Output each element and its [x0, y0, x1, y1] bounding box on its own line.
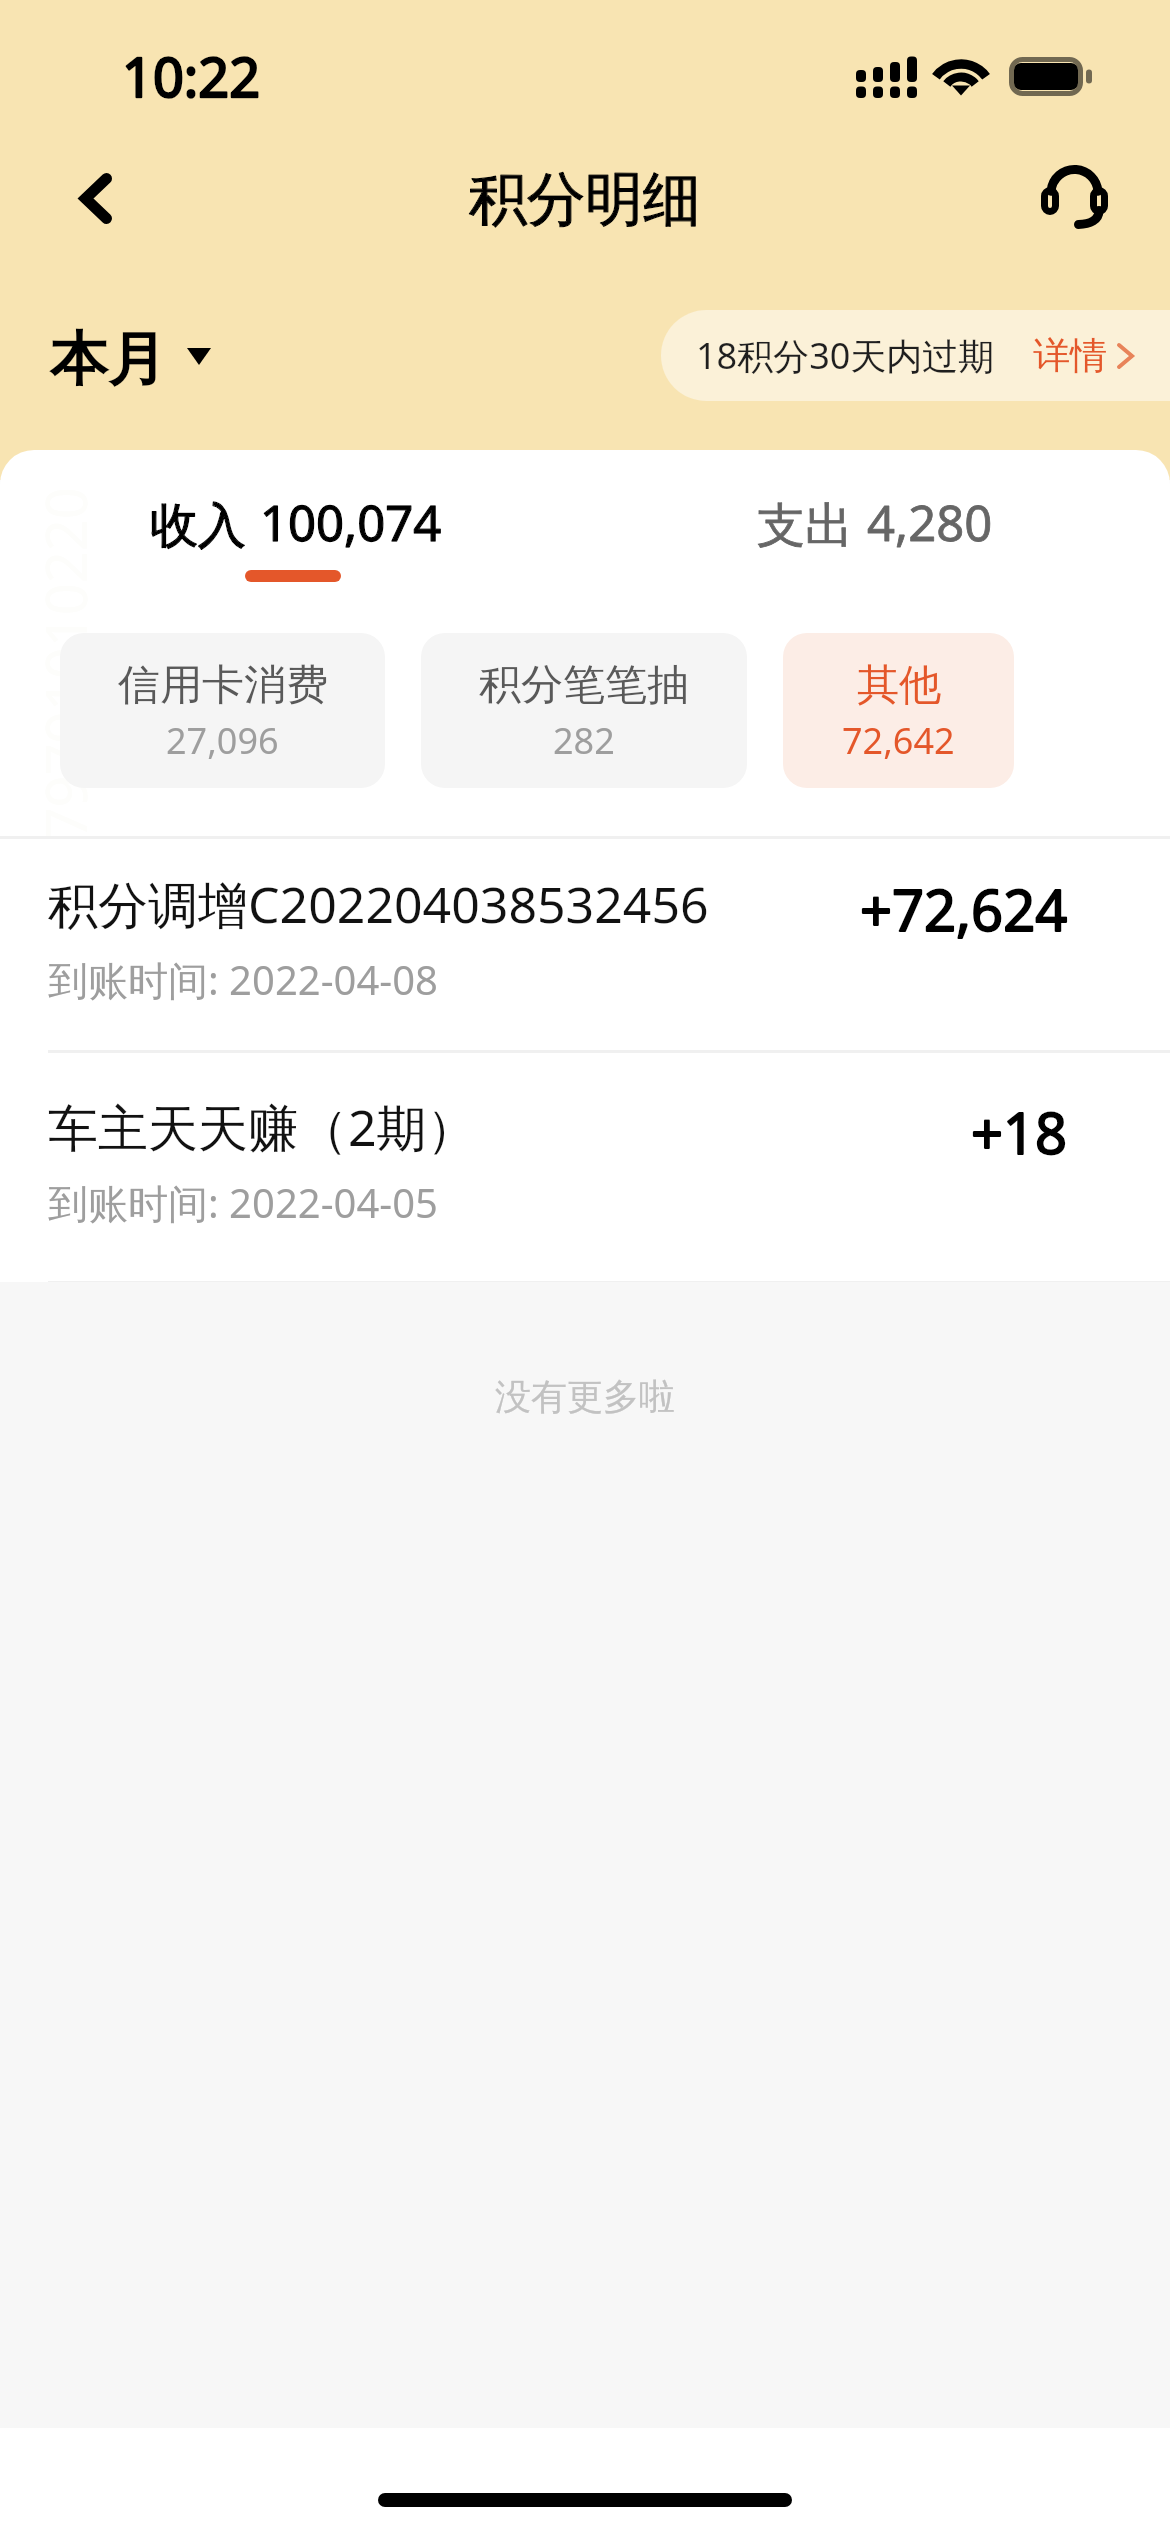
button[interactable]: 本月 [36, 313, 231, 405]
staticText: 72,642 [842, 716, 955, 765]
staticText: 79791010220 [26, 486, 102, 839]
staticText: 积分调增C202204038532456 [48, 870, 709, 938]
staticText: 10:22 [122, 39, 261, 113]
button[interactable]: 车主天天赚（2期） [0, 1062, 1170, 1273]
staticText: 到账时间: 2022-04-05 [48, 1175, 438, 1230]
staticText: 到账时间: 2022-04-08 [48, 952, 438, 1007]
staticText: +18 [971, 1094, 1068, 1170]
staticText: 收入 [150, 496, 246, 556]
staticText: 积分笔笔抽 [479, 659, 689, 712]
staticText: +72,624 [860, 871, 1068, 947]
staticText: 282 [553, 716, 615, 765]
button[interactable]: 信用卡消费 [60, 633, 385, 788]
staticText: 10:22 [122, 39, 261, 113]
staticText: +72,624 [860, 871, 1068, 947]
button[interactable]: Back [36, 138, 156, 258]
staticText: 信用卡消费 [118, 659, 328, 712]
staticText: 支出 [757, 496, 853, 556]
button[interactable]: 其他 [783, 633, 1014, 788]
staticText: 27,096 [166, 716, 279, 765]
staticText: 其他 [857, 659, 941, 712]
staticText: 车主天天赚（2期） [48, 1093, 477, 1161]
button[interactable]: Customer service [1014, 138, 1134, 258]
staticText: 没有更多啦 [495, 1374, 675, 1419]
staticText: 积分明细 [469, 163, 701, 236]
staticText: 收入 [150, 496, 246, 556]
button[interactable]: 积分笔笔抽 [421, 633, 747, 788]
staticText: 100,074 [260, 489, 442, 556]
staticText: 积分明细 [469, 163, 701, 236]
staticText: 本月 [50, 323, 166, 396]
button[interactable]: 18积分30天内过期 [661, 310, 1170, 401]
staticText: 18积分30天内过期 [696, 331, 995, 380]
button[interactable]: 支出 [585, 460, 1130, 620]
button[interactable]: 积分调增C202204038532456 [0, 839, 1170, 1050]
staticText: 100,074 [260, 489, 442, 556]
staticText: 支出 [757, 496, 853, 556]
button[interactable]: 收入 [20, 460, 565, 620]
staticText: 详情 [1033, 332, 1107, 379]
staticText: +18 [971, 1094, 1068, 1170]
staticText: 4,280 [867, 489, 993, 556]
staticText: 4,280 [867, 489, 993, 556]
